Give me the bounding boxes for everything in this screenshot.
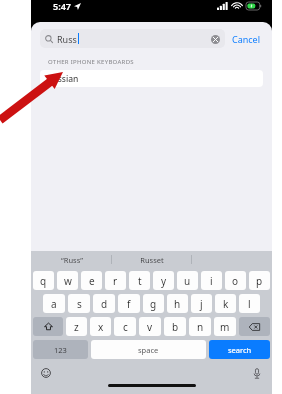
staticText: u	[184, 274, 191, 288]
button[interactable]: i	[201, 271, 222, 290]
staticText: 123	[54, 345, 67, 355]
staticText: w	[64, 274, 72, 288]
staticText: h	[174, 297, 181, 311]
button[interactable]: n	[189, 317, 211, 336]
staticText: b	[172, 320, 179, 334]
button[interactable]: q	[33, 271, 54, 290]
button[interactable]: s	[68, 294, 90, 313]
staticText: g	[150, 297, 157, 311]
button[interactable]: Russian	[40, 70, 263, 87]
button[interactable]: Russet	[112, 251, 192, 268]
button[interactable]: d	[93, 294, 115, 313]
staticText: Russ	[57, 33, 77, 45]
button[interactable]: Emoji	[40, 367, 52, 379]
staticText: x	[98, 320, 104, 334]
staticText: Russet	[140, 255, 164, 265]
button[interactable]: search	[209, 340, 270, 359]
staticText: e	[89, 274, 95, 288]
button[interactable]: Backspace	[239, 317, 270, 336]
staticText: t	[138, 274, 142, 288]
button[interactable]: x	[90, 317, 111, 336]
button[interactable]: Russ	[40, 29, 225, 48]
staticText: n	[197, 320, 204, 334]
staticText: q	[40, 274, 47, 288]
staticText: j	[200, 297, 203, 311]
button[interactable]: t	[129, 271, 150, 290]
staticText: c	[123, 320, 128, 334]
staticText: r	[113, 274, 118, 288]
button[interactable]: g	[143, 294, 164, 313]
staticText: m	[220, 320, 230, 334]
staticText: 5:47	[53, 0, 71, 12]
staticText: f	[127, 297, 131, 311]
staticText: space	[138, 345, 159, 355]
button[interactable]: 123	[33, 340, 88, 359]
button[interactable]: space	[91, 340, 206, 359]
button[interactable]: c	[114, 317, 136, 336]
staticText: Russian	[47, 73, 79, 85]
button[interactable]: y	[153, 271, 174, 290]
staticText: z	[74, 320, 79, 334]
button[interactable]: j	[191, 294, 212, 313]
button[interactable]: Clear text	[210, 34, 220, 44]
button[interactable]: v	[139, 317, 161, 336]
staticText: o	[232, 274, 239, 288]
staticText: l	[248, 297, 251, 311]
button[interactable]: a	[43, 294, 65, 313]
button[interactable]: f	[118, 294, 140, 313]
button[interactable]: p	[249, 271, 270, 290]
staticText: y	[161, 274, 167, 288]
staticText: s	[77, 297, 82, 311]
button[interactable]: Shift	[33, 317, 63, 336]
staticText: p	[256, 274, 263, 288]
button[interactable]: o	[225, 271, 246, 290]
button[interactable]: w	[57, 271, 78, 290]
button[interactable]: Dictation	[251, 367, 263, 379]
button[interactable]: b	[164, 317, 186, 336]
button[interactable]: Cancel	[225, 33, 263, 45]
button[interactable]: e	[81, 271, 102, 290]
staticText: OTHER IPHONE KEYBOARDS	[48, 58, 134, 66]
staticText: k	[223, 297, 229, 311]
button[interactable]: r	[105, 271, 126, 290]
staticText: search	[228, 345, 252, 355]
staticText: i	[210, 274, 213, 288]
staticText: a	[51, 297, 57, 311]
button[interactable]: “Russ”	[31, 251, 112, 268]
staticText: Cancel	[232, 33, 261, 45]
button[interactable]: m	[214, 317, 236, 336]
button[interactable]: z	[66, 317, 87, 336]
button[interactable]: h	[167, 294, 188, 313]
button[interactable]: u	[177, 271, 198, 290]
staticText: d	[101, 297, 108, 311]
button[interactable]: l	[239, 294, 260, 313]
staticText: v	[147, 320, 153, 334]
staticText: “Russ”	[61, 255, 83, 265]
button[interactable]: k	[215, 294, 236, 313]
